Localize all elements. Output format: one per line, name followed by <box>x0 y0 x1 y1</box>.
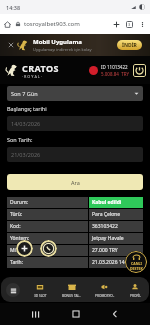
staticText: ID 11013422 <box>101 64 128 70</box>
button[interactable]: 21/03/2026 <box>7 147 143 162</box>
staticText: CANLI <box>131 261 142 266</box>
button[interactable]: 3 <box>126 21 133 28</box>
button[interactable]: Add <box>16 240 33 257</box>
staticText: İNDİR <box>122 42 137 49</box>
staticText: Yöntem: <box>10 235 30 242</box>
button[interactable]: More options <box>138 20 147 29</box>
staticText: 363103422 <box>92 223 118 230</box>
button[interactable]: Logout <box>133 64 146 77</box>
staticText: Uygulamayı indirerek için kolay <box>33 47 92 52</box>
staticText: Türü: <box>10 211 23 218</box>
staticText: 3D SLOT <box>34 294 47 298</box>
button[interactable]: Son 7 Gün <box>7 86 143 101</box>
button[interactable]: Profil <box>121 277 149 302</box>
staticText: Mobil Uygulama <box>33 38 82 46</box>
staticText: 21.03.2026 14:3 <box>92 259 129 266</box>
staticText: DESTEK <box>130 266 143 271</box>
staticText: 5.008.84 TRY <box>101 71 130 77</box>
staticText: PROFİL <box>130 294 141 298</box>
staticText: Ara <box>71 179 80 186</box>
staticText: Son 7 Gün <box>11 90 38 97</box>
staticText: 21/03/2026 <box>11 151 41 158</box>
button[interactable]: Promosyonlar <box>88 277 121 302</box>
staticText: 27.000 TRY <box>92 247 118 254</box>
button[interactable]: Back <box>111 310 119 318</box>
button[interactable]: Close <box>8 42 14 48</box>
staticText: Son Tarih: <box>7 136 33 143</box>
button[interactable]: CANLI <box>125 251 147 273</box>
button[interactable]: Recents <box>31 310 40 319</box>
button[interactable]: Home <box>4 21 11 28</box>
other: Secure <box>15 21 21 27</box>
staticText: Durum: <box>10 199 28 206</box>
button[interactable]: WhatsApp <box>40 240 57 257</box>
staticText: Miktar: <box>10 247 27 254</box>
staticText: Kabul edildi <box>92 199 122 206</box>
staticText: CRATOS <box>22 62 59 74</box>
staticText: Jetpay Havale <box>92 235 124 242</box>
staticText: Para Çekme <box>92 211 121 218</box>
button[interactable]: Menu <box>1 277 25 302</box>
staticText: Başlangıç tarihi <box>7 105 47 112</box>
button[interactable]: 14/03/2026 <box>7 116 143 131</box>
button[interactable]: İNDİR <box>117 40 142 50</box>
button[interactable]: 3D Slot <box>25 277 55 302</box>
staticText: 3 <box>128 22 131 27</box>
staticText: Kod: <box>10 223 21 230</box>
button[interactable]: Home <box>72 310 80 318</box>
staticText: tosroyalbet903.com <box>24 20 80 28</box>
button[interactable]: Bonus talebi <box>55 277 88 302</box>
staticText: · R O Y A L · <box>22 74 42 79</box>
staticText: 14:38 <box>6 4 21 11</box>
staticText: BONUS TAL.. <box>62 294 81 298</box>
button[interactable]: New tab <box>112 20 121 29</box>
staticText: 14/03/2026 <box>11 120 41 127</box>
button[interactable]: Ara <box>7 174 143 190</box>
button[interactable]: Notifications <box>89 66 98 75</box>
staticText: PROMOSYO.. <box>95 294 115 298</box>
staticText: Tarih: <box>10 259 23 266</box>
